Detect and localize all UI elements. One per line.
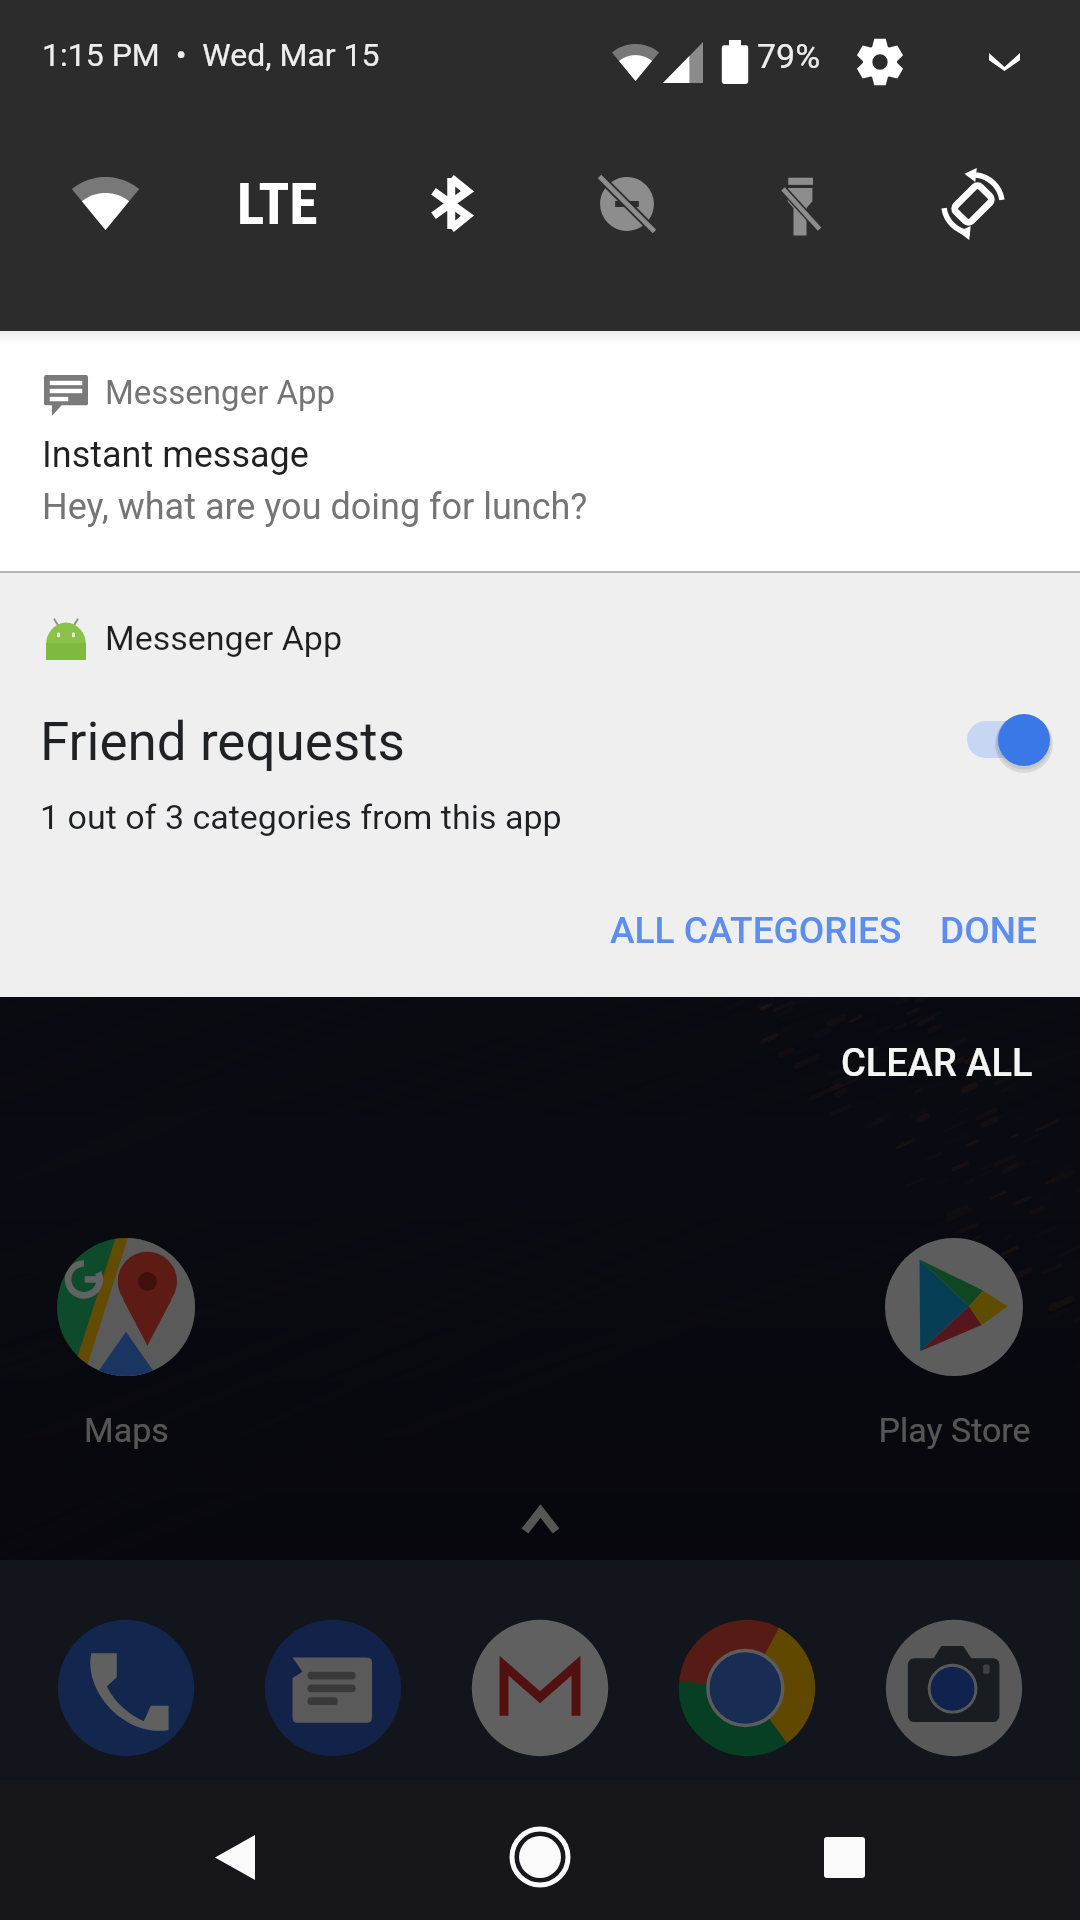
button[interactable]: DONE <box>926 896 1051 964</box>
button[interactable]: Home <box>480 1797 600 1917</box>
button[interactable]: Do not disturb <box>572 149 682 259</box>
button[interactable]: Auto rotate <box>918 149 1028 259</box>
staticText: DONE <box>940 909 1037 952</box>
button[interactable]: Settings <box>838 20 922 104</box>
button[interactable]: Open app drawer <box>510 1491 570 1551</box>
button[interactable]: Back <box>175 1797 295 1917</box>
button[interactable]: Mobile data LTE <box>222 149 332 259</box>
staticText: Messenger App <box>105 373 336 412</box>
staticText: LTE <box>237 171 318 238</box>
staticText: Play Store <box>878 1410 1031 1450</box>
button[interactable]: Phone <box>46 1608 206 1768</box>
staticText: Friend requests <box>40 711 405 773</box>
button[interactable]: Collapse quick settings <box>962 20 1046 104</box>
button[interactable]: Wi-Fi <box>50 148 160 258</box>
staticText: CLEAR ALL <box>841 1041 1033 1086</box>
button[interactable]: CLEAR ALL <box>829 1026 1045 1100</box>
staticText: Hey, what are you doing for lunch? <box>42 486 588 528</box>
button[interactable]: Chrome <box>667 1608 827 1768</box>
staticText: Maps <box>84 1410 169 1450</box>
button[interactable]: Messages <box>253 1608 413 1768</box>
button[interactable]: Messenger App <box>0 331 1080 573</box>
staticText: 79% <box>757 36 821 76</box>
staticText: 1:15 PM • Wed, Mar 15 <box>42 36 380 74</box>
button[interactable]: Friend requests notifications on <box>950 705 1065 777</box>
button[interactable]: Flashlight <box>745 150 855 260</box>
staticText: ALL CATEGORIES <box>610 909 902 952</box>
staticText: 1 out of 3 categories from this app <box>40 797 562 837</box>
button[interactable]: Maps <box>36 1238 216 1450</box>
button[interactable]: Play Store <box>864 1238 1044 1450</box>
staticText: Instant message <box>42 434 309 476</box>
staticText: Messenger App <box>105 618 343 658</box>
button[interactable]: Camera <box>874 1608 1034 1768</box>
button[interactable]: Recent apps <box>784 1797 904 1917</box>
button[interactable]: Bluetooth <box>395 148 505 258</box>
button[interactable]: ALL CATEGORIES <box>596 896 916 964</box>
button[interactable]: Gmail <box>460 1608 620 1768</box>
